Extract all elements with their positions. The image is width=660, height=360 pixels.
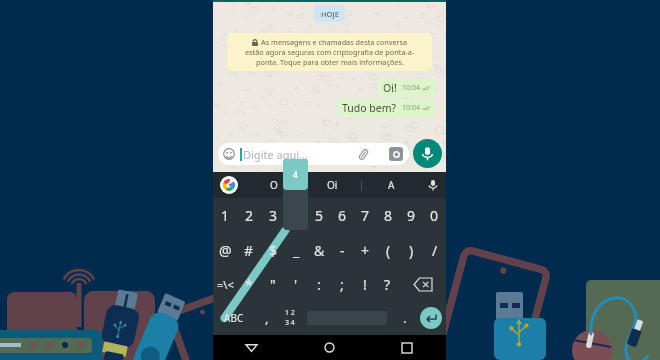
button[interactable]: Camera — [389, 147, 403, 161]
staticText: $ — [269, 241, 278, 260]
button[interactable]: A — [362, 172, 420, 198]
staticText: As mensagens e chamadas desta conversa — [261, 37, 408, 47]
staticText: 0 — [430, 206, 439, 225]
button[interactable]: 2 — [237, 198, 261, 233]
button[interactable]: , — [255, 301, 279, 335]
button[interactable]: @ — [213, 233, 237, 267]
staticText: 5 — [315, 206, 324, 225]
staticText: @ — [219, 241, 232, 260]
staticText: ! — [363, 275, 367, 294]
button[interactable]: 1 2 — [279, 301, 300, 335]
staticText: * — [245, 275, 253, 294]
button[interactable]: 9 — [400, 198, 423, 233]
button[interactable]: Voice input — [420, 179, 446, 191]
button[interactable]: _ — [285, 233, 308, 267]
button[interactable]: : — [307, 267, 330, 301]
staticText: + — [361, 241, 370, 260]
staticText: ' — [294, 275, 298, 294]
staticText: 10:04 — [402, 103, 420, 113]
staticText: 10:04 — [402, 83, 420, 93]
staticText: Oi! — [383, 81, 397, 95]
button[interactable]: HOJE — [314, 5, 345, 22]
button[interactable]: ' — [284, 267, 307, 301]
staticText: ( — [386, 241, 391, 260]
button[interactable]: - — [331, 233, 354, 267]
button[interactable]: Oi — [303, 172, 361, 198]
button[interactable]: # — [237, 233, 261, 267]
staticText: ; — [340, 275, 344, 294]
button[interactable]: ; — [330, 267, 353, 301]
button[interactable]: =\< — [213, 267, 237, 301]
button[interactable]: 3 — [261, 198, 285, 233]
button[interactable]: / — [423, 233, 446, 267]
staticText: _ — [293, 241, 300, 260]
button[interactable]: Home — [290, 335, 368, 360]
button[interactable]: Backspace — [399, 267, 446, 301]
button[interactable]: Recents — [368, 335, 446, 360]
staticText: / — [432, 241, 438, 260]
staticText: Tudo bem? — [342, 101, 397, 115]
button[interactable]: As mensagens e chamadas desta conversa — [227, 33, 432, 71]
staticText: 1 2 — [285, 308, 295, 318]
button[interactable]: ? — [376, 267, 399, 301]
button[interactable]: Digite aqui... — [218, 143, 409, 165]
staticText: " — [270, 275, 276, 294]
button[interactable]: Attach — [357, 148, 370, 161]
button[interactable]: 4 — [285, 198, 308, 233]
button[interactable]: ! — [353, 267, 376, 301]
staticText: HOJE — [321, 9, 339, 19]
button[interactable]: + — [354, 233, 377, 267]
button[interactable]: Google — [220, 176, 238, 194]
button[interactable]: 1 — [213, 198, 237, 233]
button[interactable]: $ — [261, 233, 285, 267]
staticText: : — [317, 275, 321, 294]
button[interactable]: " — [261, 267, 284, 301]
staticText: 9 — [407, 206, 416, 225]
button[interactable]: O — [244, 178, 303, 192]
button[interactable]: ) — [400, 233, 423, 267]
staticText: - — [340, 241, 345, 260]
staticText: Digite aqui... — [243, 147, 308, 162]
button[interactable]: 7 — [354, 198, 377, 233]
staticText: , — [265, 309, 269, 327]
staticText: ? — [384, 275, 391, 294]
staticText: A — [388, 178, 395, 192]
button[interactable]: 5 — [308, 198, 331, 233]
button[interactable]: Record voice message — [413, 139, 442, 168]
button[interactable]: & — [308, 233, 331, 267]
staticText: 8 — [384, 206, 393, 225]
staticText: & — [314, 241, 325, 260]
button[interactable]: 0 — [423, 198, 446, 233]
button[interactable]: . — [394, 301, 415, 335]
button[interactable]: Back — [213, 335, 290, 360]
button[interactable]: 8 — [377, 198, 400, 233]
staticText: 4 — [293, 169, 298, 180]
staticText: ABC — [224, 311, 244, 325]
button[interactable]: ( — [377, 233, 400, 267]
button[interactable]: Tudo bem? — [337, 99, 435, 117]
staticText: estão agora seguras com criptografia de … — [245, 47, 415, 57]
staticText: # — [244, 241, 254, 260]
staticText: 7 — [361, 206, 370, 225]
button[interactable]: ABC — [213, 301, 255, 335]
staticText: ponta. Toque para obter mais informações… — [256, 57, 404, 67]
staticText: O — [270, 178, 278, 192]
button[interactable]: Oi! — [378, 79, 435, 97]
staticText: 1 — [221, 206, 230, 225]
staticText: Oi — [327, 178, 338, 192]
staticText: 2 — [245, 206, 254, 225]
button[interactable]: * — [237, 267, 261, 301]
staticText: 3 — [269, 206, 278, 225]
staticText: 3 4 — [285, 318, 295, 328]
staticText: ) — [409, 241, 414, 260]
staticText: 6 — [338, 206, 347, 225]
staticText: =\< — [217, 277, 234, 292]
button[interactable]: Enter — [420, 307, 442, 329]
button[interactable]: 6 — [331, 198, 354, 233]
staticText: . — [403, 309, 407, 327]
